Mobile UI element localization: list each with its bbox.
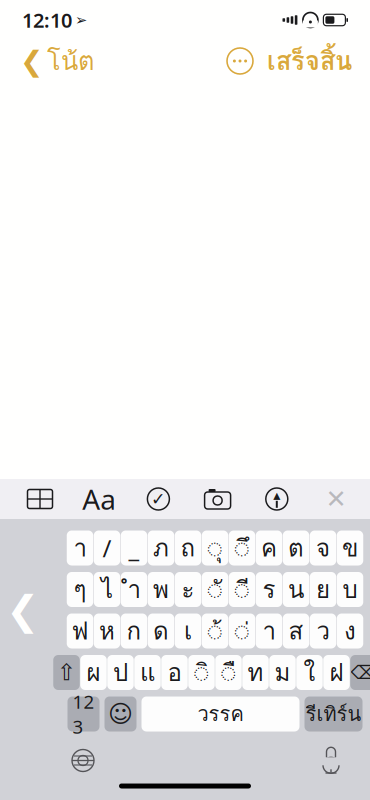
staticText: รีเทิร์น [305, 698, 361, 729]
button[interactable]: ว [310, 613, 336, 648]
button[interactable]: ถ [175, 530, 201, 565]
button[interactable]: Delete [350, 655, 370, 690]
staticText: ้ [207, 612, 222, 650]
button[interactable]: Previous keyboard page [0, 580, 46, 640]
button[interactable]: แ [134, 655, 161, 690]
button[interactable]: Shift [53, 655, 80, 690]
staticText: ึ [234, 529, 249, 567]
button[interactable]: Text format [77, 479, 121, 519]
button[interactable]: ย [310, 572, 336, 607]
button[interactable]: ค [256, 530, 282, 565]
button[interactable]: วรรค [141, 696, 299, 731]
button[interactable]: า [256, 613, 282, 648]
button[interactable]: ม [269, 655, 296, 690]
staticText: 123 [72, 689, 94, 739]
button[interactable]: บ [337, 572, 363, 607]
button[interactable]: ฟ [67, 613, 93, 648]
button[interactable]: ไ [94, 572, 120, 607]
button[interactable]: ป [107, 655, 134, 690]
button[interactable]: รีเทิร์น [304, 696, 362, 731]
button[interactable]: ด [148, 613, 174, 648]
button[interactable]: ส [283, 613, 309, 648]
staticText: ภ [153, 529, 169, 567]
button[interactable]: ท [242, 655, 269, 690]
button[interactable]: จ [310, 530, 336, 565]
staticText: จ [316, 529, 330, 567]
staticText: แ [140, 654, 155, 691]
staticText: โน้ต [47, 41, 94, 81]
button[interactable]: ง [337, 613, 363, 648]
staticText: ๆ [73, 571, 86, 608]
button[interactable]: ก [121, 613, 147, 648]
staticText: ✓ [151, 489, 166, 509]
button[interactable]: ิ [188, 655, 215, 690]
button[interactable]: ้ [202, 613, 228, 648]
button[interactable]: Markup [255, 479, 299, 519]
staticText: ด [153, 612, 169, 650]
button[interactable]: ภ [148, 530, 174, 565]
staticText: ➢ [75, 12, 87, 28]
button[interactable]: ๆ [67, 572, 93, 607]
button[interactable]: เ [175, 613, 201, 648]
staticText: ห [99, 612, 115, 650]
staticText: น [288, 571, 304, 608]
button[interactable]: เสร็จสิ้น [259, 35, 360, 87]
button[interactable]: น [283, 572, 309, 607]
button[interactable]: _ [121, 530, 147, 565]
staticText: ป [113, 654, 128, 691]
button[interactable]: ฝ [323, 655, 350, 690]
staticText: ☺ [108, 700, 133, 728]
staticText: ำ [127, 571, 140, 608]
button[interactable]: พ [148, 572, 174, 607]
button[interactable]: 123 [67, 696, 99, 731]
staticText: ุ [207, 529, 222, 567]
button[interactable]: More options [221, 42, 259, 80]
staticText: วรรค [197, 698, 243, 729]
staticText: ⇧ [57, 660, 76, 685]
button[interactable]: ื [215, 655, 242, 690]
button[interactable]: ร [256, 572, 282, 607]
staticText: ไ [101, 571, 113, 608]
button[interactable]: ุ [202, 530, 228, 565]
button[interactable]: ใ [296, 655, 323, 690]
staticText: ย [316, 571, 330, 608]
staticText: เสร็จสิ้น [267, 41, 352, 81]
staticText: ค [261, 529, 277, 567]
button[interactable]: ึ [229, 530, 255, 565]
staticText: ม [274, 654, 290, 691]
button[interactable]: อ [161, 655, 188, 690]
button[interactable]: / [94, 530, 120, 565]
staticText: / [102, 532, 111, 564]
button[interactable]: Table [18, 479, 62, 519]
button[interactable]: Camera [196, 479, 240, 519]
button[interactable]: ำ [121, 572, 147, 607]
button[interactable]: ะ [175, 572, 201, 607]
staticText: ✕ [325, 485, 346, 513]
button[interactable]: ี [229, 572, 255, 607]
button[interactable]: Next keyboard [66, 745, 100, 775]
staticText: ❮ [6, 588, 40, 633]
button[interactable]: Close [314, 479, 358, 519]
button[interactable]: ข [337, 530, 363, 565]
staticText: ิ [194, 654, 209, 691]
button[interactable]: Emoji [104, 696, 136, 731]
staticText: า [73, 529, 86, 567]
staticText: ข [342, 529, 358, 567]
button[interactable]: ห [94, 613, 120, 648]
staticText: ❮ [20, 45, 43, 77]
staticText: ี [234, 571, 249, 608]
button[interactable]: ต [283, 530, 309, 565]
button[interactable]: Checklist [136, 479, 180, 519]
staticText: ⌫ [350, 662, 370, 683]
button[interactable]: ผ [80, 655, 107, 690]
button[interactable]: า [67, 530, 93, 565]
staticText: ฟ [71, 612, 88, 650]
button[interactable]: ั [202, 572, 228, 607]
button[interactable]: ่ [229, 613, 255, 648]
staticText: ผ [86, 654, 100, 691]
button[interactable]: Dictation [314, 745, 348, 775]
button[interactable]: ❮ [10, 35, 104, 87]
staticText: ▲ [273, 490, 280, 501]
staticText: บ [342, 571, 357, 608]
staticText: ส [288, 612, 303, 650]
